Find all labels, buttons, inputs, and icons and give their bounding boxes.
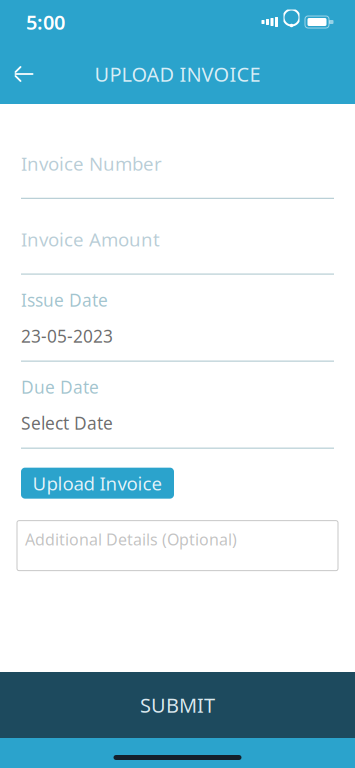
staticText: Additional Details (Optional) [25, 529, 237, 550]
staticText: Invoice Amount [21, 227, 160, 252]
button[interactable]: Upload Invoice [21, 468, 174, 499]
staticText: Invoice Number [21, 151, 162, 176]
staticText: Upload Invoice [32, 471, 162, 496]
staticText: Select Date [21, 412, 113, 435]
staticText: UPLOAD INVOICE [94, 61, 260, 87]
button[interactable]: Back [2, 52, 46, 96]
staticText: 23-05-2023 [21, 325, 113, 348]
staticText: Due Date [21, 376, 99, 399]
staticText: SUBMIT [140, 692, 215, 718]
staticText: Issue Date [21, 289, 108, 312]
button[interactable]: SUBMIT [0, 672, 355, 738]
button[interactable]: Additional Details (Optional) [17, 521, 338, 571]
button[interactable]: Due Date [21, 362, 338, 449]
staticText: 5:00 [26, 9, 65, 35]
